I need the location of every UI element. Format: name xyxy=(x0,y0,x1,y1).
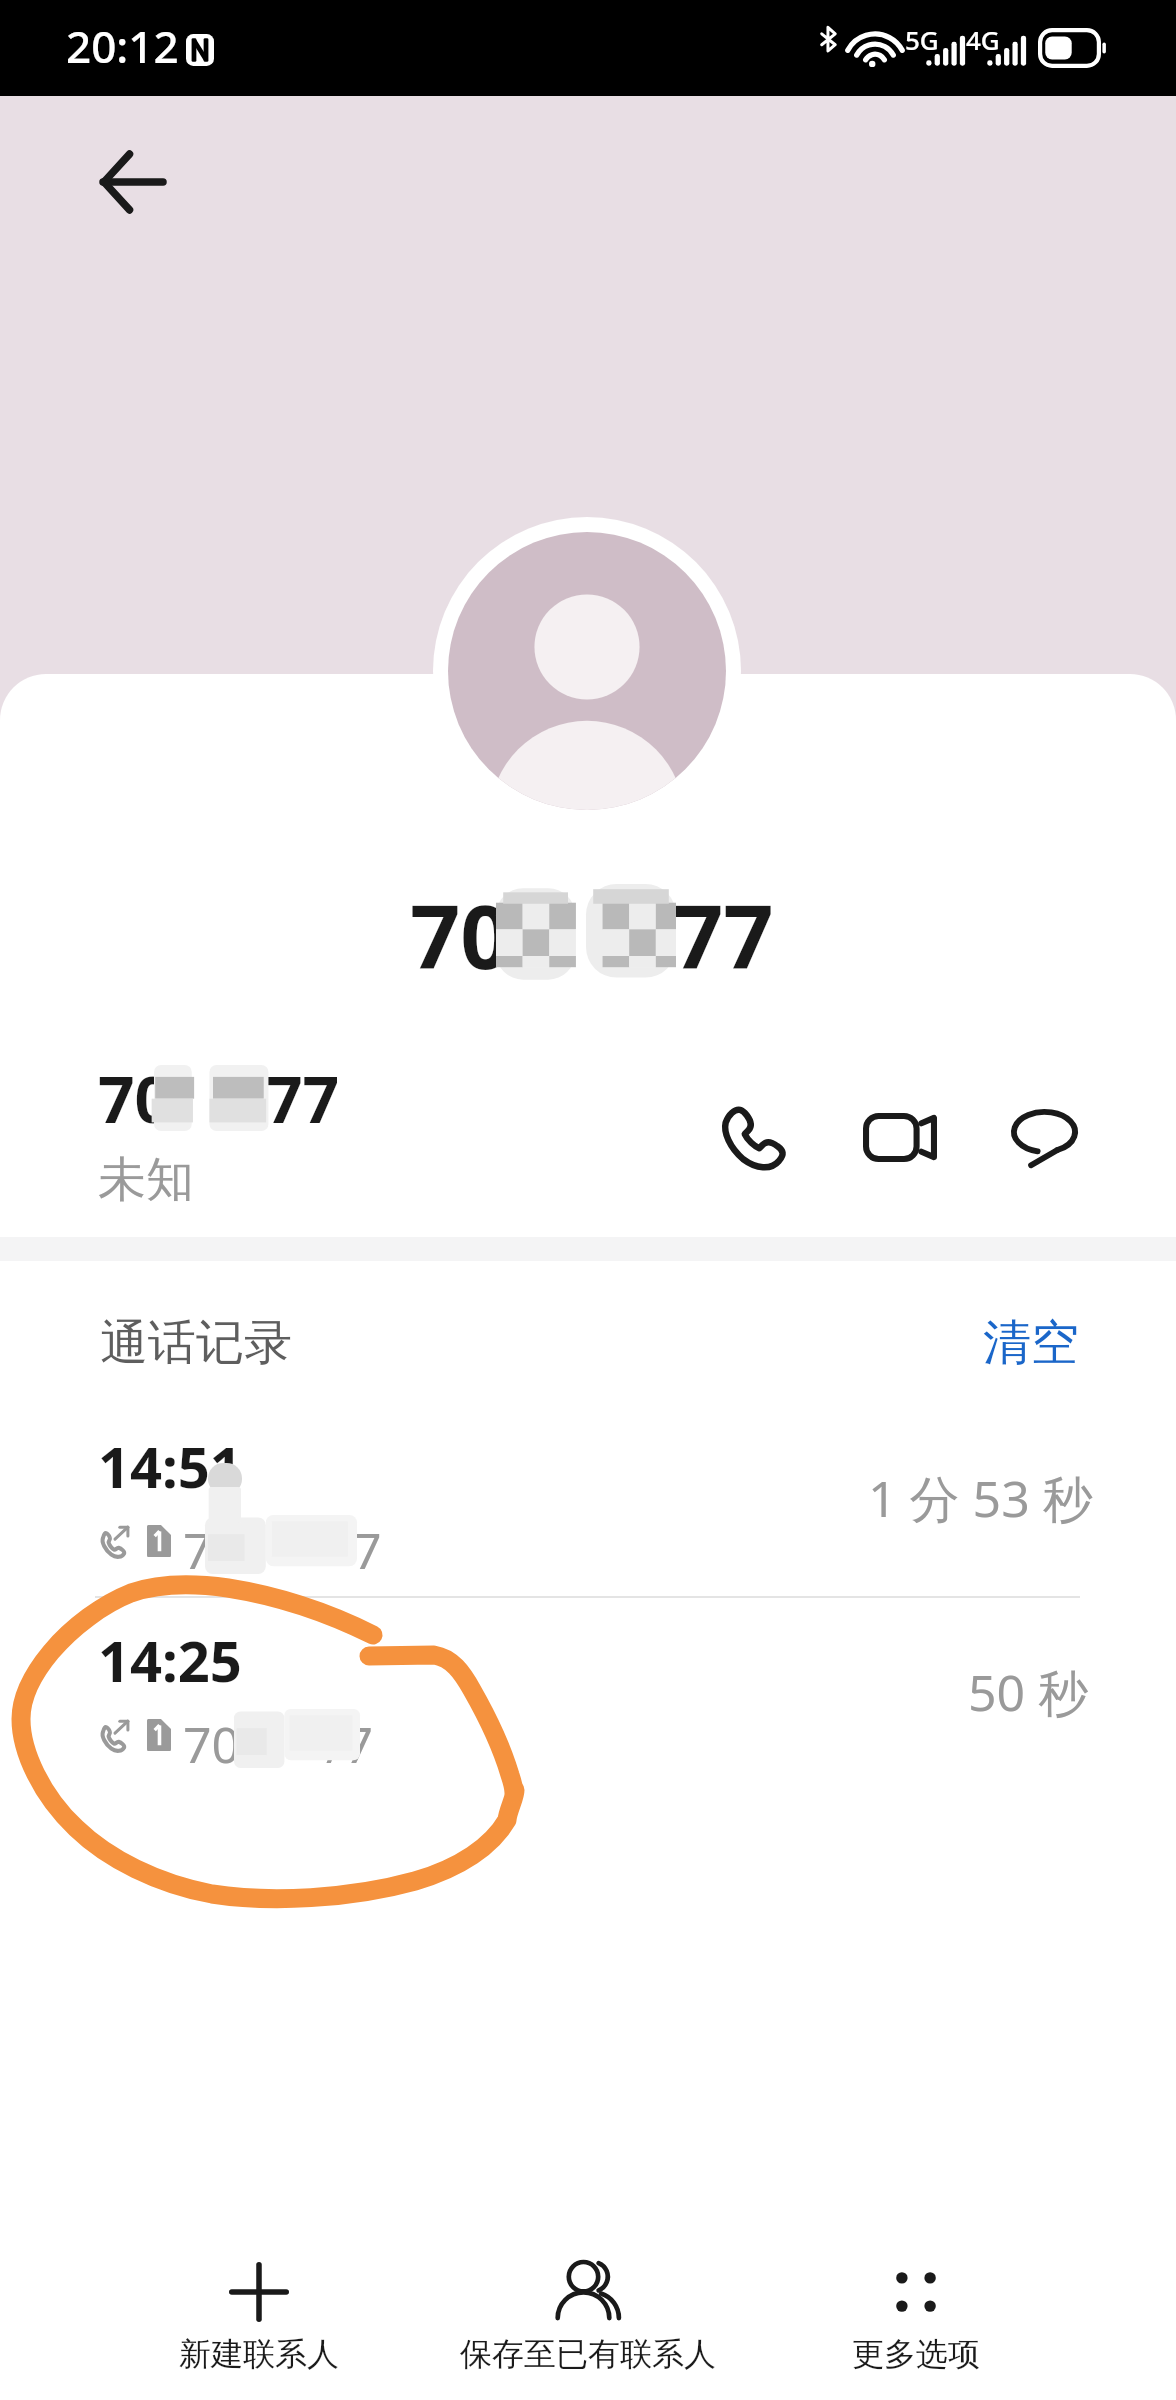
staticText: 20:12 xyxy=(66,16,179,76)
staticText: 4G xyxy=(966,22,1000,57)
staticText: /7 xyxy=(326,1710,374,1778)
staticText: 未知 xyxy=(98,1150,194,1210)
button[interactable]: Back xyxy=(72,122,192,242)
staticText: 更多选项 xyxy=(852,2334,980,2374)
staticText: 7 xyxy=(183,1516,212,1584)
button[interactable]: Message xyxy=(984,1078,1104,1198)
staticText: 70 xyxy=(183,1710,241,1778)
button[interactable]: Call xyxy=(695,1076,815,1196)
staticText: 77 xyxy=(673,875,774,995)
staticText: 70 xyxy=(410,875,511,995)
staticText: 14:25 xyxy=(98,1622,242,1698)
button[interactable]: Video call xyxy=(840,1077,960,1197)
button[interactable]: New contact xyxy=(89,2230,429,2400)
staticText: 5G xyxy=(905,22,939,57)
staticText: 1 分 53 秒 xyxy=(868,1464,1093,1532)
staticText: 77 xyxy=(266,1055,340,1142)
button[interactable]: Save to existing contact xyxy=(418,2230,758,2400)
staticText: 14:51 xyxy=(98,1428,242,1504)
button[interactable]: 清空 xyxy=(983,1313,1079,1373)
staticText: 新建联系人 xyxy=(179,2334,339,2374)
staticText: 清空 xyxy=(983,1313,1079,1373)
button[interactable]: More options xyxy=(746,2230,1086,2400)
button[interactable]: 14:25 xyxy=(0,1616,1176,1810)
staticText: 保存至已有联系人 xyxy=(460,2334,716,2374)
staticText: 7 xyxy=(353,1516,382,1584)
staticText: 70 xyxy=(98,1055,172,1142)
staticText: 50 秒 xyxy=(968,1658,1089,1726)
staticText: 通话记录 xyxy=(100,1313,292,1373)
button[interactable]: 14:51 xyxy=(0,1422,1176,1616)
